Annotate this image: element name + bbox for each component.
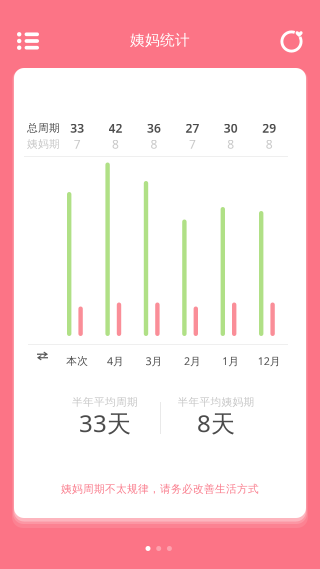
staticText: 8 [266,136,273,152]
staticText: 2月 [184,354,201,368]
staticText: 1月 [222,354,239,368]
staticText: 姨妈统计 [130,31,190,49]
staticText: 本次 [66,354,88,367]
staticText: 33 [70,120,84,136]
staticText: 总周期 [27,121,60,134]
staticText: 33天 [79,407,131,439]
staticText: 4月 [107,354,124,368]
staticText: 27 [185,120,199,136]
staticText: 12月 [258,354,281,368]
staticText: 姨妈周期不太规律，请务必改善生活方式 [61,482,259,495]
staticText: 8 [227,136,234,152]
staticText: 36 [147,120,161,136]
staticText: 半年平均周期 [72,395,138,408]
staticText: 7 [189,136,196,152]
staticText: 8 [112,136,119,152]
staticText: 3月 [145,354,162,368]
staticText: 8 [150,136,157,152]
button[interactable]: 切换视图 [28,346,56,366]
staticText: 8天 [197,407,235,439]
staticText: 42 [109,120,123,136]
staticText: 姨妈期 [27,137,60,150]
button[interactable]: 菜单 [6,22,50,60]
staticText: 7 [74,136,81,152]
staticText: 30 [224,120,238,136]
staticText: 29 [262,120,276,136]
staticText: 半年平均姨妈期 [177,395,254,408]
button[interactable]: 刷新 [270,20,312,62]
